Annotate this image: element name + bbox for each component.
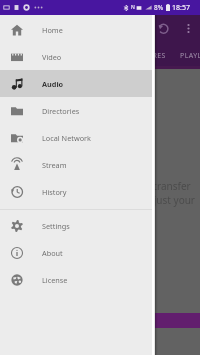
staticText: 18:57 <box>172 3 190 13</box>
button[interactable]: About <box>0 239 155 266</box>
button[interactable]: Video <box>0 43 155 70</box>
button[interactable]: Settings <box>0 212 155 239</box>
button[interactable]: Audio <box>0 70 155 97</box>
button[interactable]: License <box>0 266 155 293</box>
staticText: GENRES <box>137 51 166 61</box>
staticText: History <box>42 187 67 197</box>
staticText: License <box>42 275 68 285</box>
staticText: Stream <box>42 160 67 170</box>
staticText: Local Network <box>42 133 91 143</box>
button[interactable]: Refresh <box>151 16 175 40</box>
button[interactable]: Local Network <box>0 124 155 151</box>
button[interactable]: PLAYLISTS <box>173 47 200 65</box>
staticText: Home <box>42 25 63 35</box>
staticText: 8% <box>154 3 164 12</box>
button[interactable]: History <box>0 178 155 205</box>
button[interactable]: More options <box>176 16 200 40</box>
button[interactable]: GENRES <box>130 47 173 65</box>
button[interactable] <box>0 313 200 328</box>
staticText: files to your device or adjust your <box>39 193 195 207</box>
staticText: Video <box>42 52 62 62</box>
staticText: N <box>131 4 135 11</box>
button[interactable]: Home <box>0 16 155 43</box>
staticText: Directories <box>42 106 80 116</box>
staticText: PLAYLISTS <box>180 51 200 61</box>
button[interactable]: Directories <box>0 97 155 124</box>
staticText: Settings <box>42 221 70 231</box>
staticText: About <box>42 248 63 258</box>
staticText: Audio <box>42 79 64 89</box>
button[interactable]: Stream <box>0 151 155 178</box>
staticText: No media found. Please transfer <box>39 179 191 193</box>
